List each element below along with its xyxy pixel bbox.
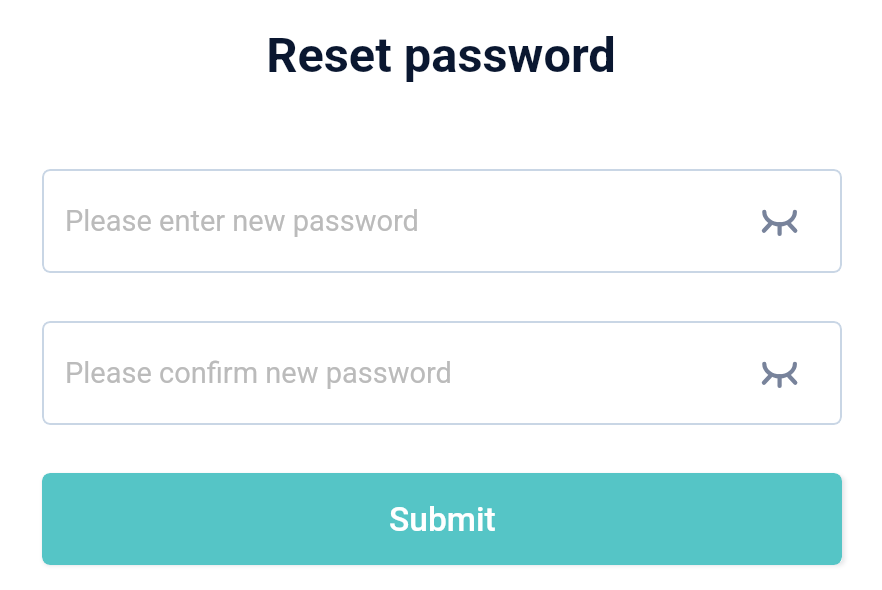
button[interactable]: Please enter new password	[42, 169, 842, 273]
staticText: Please confirm new password	[65, 356, 758, 390]
staticText: Please enter new password	[65, 204, 758, 238]
button[interactable]: Please confirm new password	[42, 321, 842, 425]
button[interactable]: Show password	[758, 347, 810, 399]
staticText: Reset password	[0, 27, 882, 84]
button[interactable]: Submit	[42, 473, 842, 565]
staticText: Submit	[389, 500, 496, 539]
button[interactable]: Show password	[758, 195, 810, 247]
